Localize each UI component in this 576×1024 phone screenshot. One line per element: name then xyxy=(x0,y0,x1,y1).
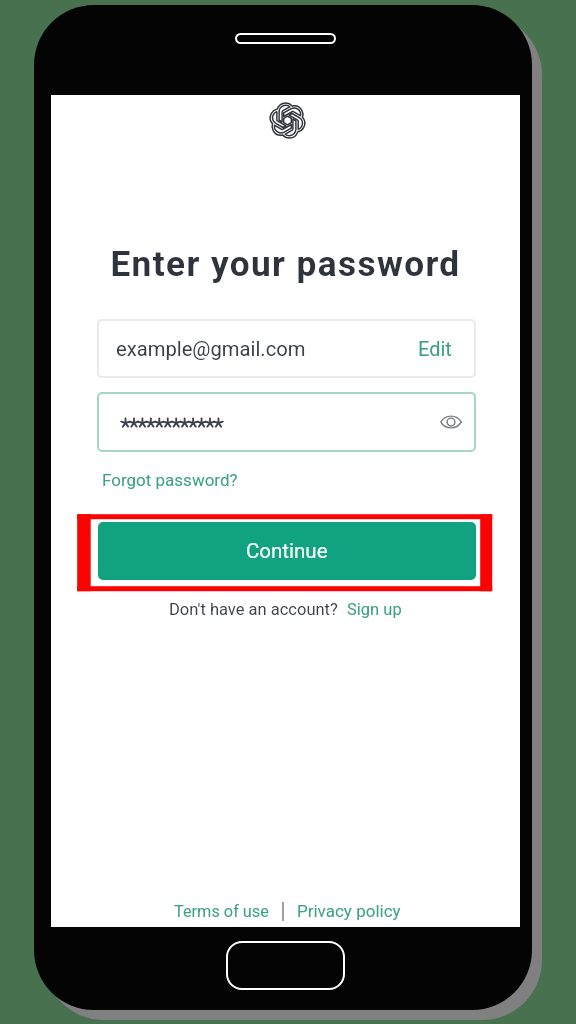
staticText: example@gmail.com xyxy=(116,337,306,361)
button[interactable]: Edit xyxy=(397,325,476,372)
staticText: Privacy policy xyxy=(297,901,401,921)
staticText: Don't have an account? xyxy=(169,600,338,619)
staticText: Edit xyxy=(418,337,452,360)
button[interactable]: Sign up xyxy=(347,600,402,619)
staticText: Enter your password xyxy=(51,243,520,284)
button[interactable]: Terms of use xyxy=(174,902,269,921)
button[interactable]: Show password xyxy=(97,392,476,452)
staticText: Forgot password? xyxy=(102,470,238,490)
other: Home xyxy=(226,941,345,990)
button[interactable]: Show password xyxy=(434,405,468,439)
button[interactable]: Forgot password? xyxy=(96,465,244,495)
button[interactable]: Privacy policy xyxy=(297,901,401,921)
staticText: Continue xyxy=(246,539,328,563)
button[interactable]: example@gmail.com xyxy=(97,319,476,378)
staticText: Terms of use xyxy=(174,902,269,921)
staticText: Sign up xyxy=(347,600,402,619)
button[interactable]: Continue xyxy=(98,522,476,580)
